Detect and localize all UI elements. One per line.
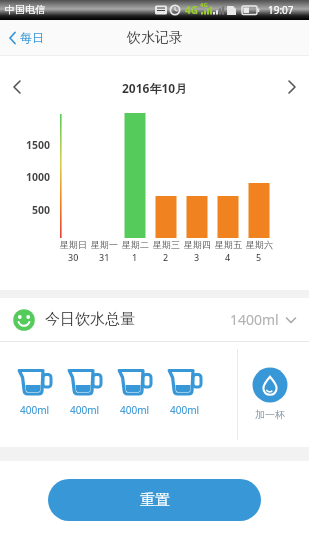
staticText: 400ml <box>170 403 200 417</box>
staticText: 1000 <box>25 170 50 184</box>
staticText: 饮水记录 <box>127 29 183 47</box>
staticText: 19:07 <box>268 3 294 17</box>
button[interactable] <box>281 78 301 96</box>
staticText: 1500 <box>25 138 50 152</box>
button[interactable]: 加一杯 <box>243 367 297 421</box>
staticText: 星期二 <box>122 239 149 250</box>
staticText: 1 <box>132 251 138 263</box>
staticText: 500 <box>31 203 50 217</box>
staticText: 400ml <box>120 403 150 417</box>
staticText: 4G <box>185 3 198 17</box>
staticText: 2 <box>163 251 169 263</box>
staticText: 3 <box>194 251 200 263</box>
staticText: 星期日 <box>60 239 87 250</box>
button[interactable]: 今日饮水总量 <box>0 298 309 341</box>
staticText: 400ml <box>70 403 100 417</box>
button[interactable]: 重置 <box>48 479 261 521</box>
staticText: 星期一 <box>91 239 118 250</box>
button[interactable]: 400ml <box>10 367 60 417</box>
button[interactable]: 400ml <box>60 367 110 417</box>
staticText: 400ml <box>20 403 50 417</box>
staticText: 4 <box>225 251 231 263</box>
staticText: 每日 <box>20 30 44 45</box>
staticText: 中国电信 <box>5 3 45 16</box>
button[interactable]: 400ml <box>110 367 160 417</box>
staticText: 1400ml <box>230 310 279 329</box>
staticText: 星期四 <box>184 239 211 250</box>
button[interactable]: 每日 <box>6 28 46 47</box>
staticText: 2016年10月 <box>122 80 188 96</box>
staticText: 4G <box>200 1 208 9</box>
staticText: 星期六 <box>246 239 273 250</box>
staticText: 5 <box>256 251 262 263</box>
button[interactable] <box>8 78 28 96</box>
staticText: 重置 <box>140 491 170 510</box>
staticText: 30 <box>68 251 79 263</box>
button[interactable]: 400ml <box>160 367 210 417</box>
staticText: 星期三 <box>153 239 180 250</box>
staticText: 星期五 <box>215 239 242 250</box>
staticText: 31 <box>99 251 110 263</box>
staticText: 加一杯 <box>255 408 285 421</box>
staticText: 今日饮水总量 <box>45 310 135 329</box>
